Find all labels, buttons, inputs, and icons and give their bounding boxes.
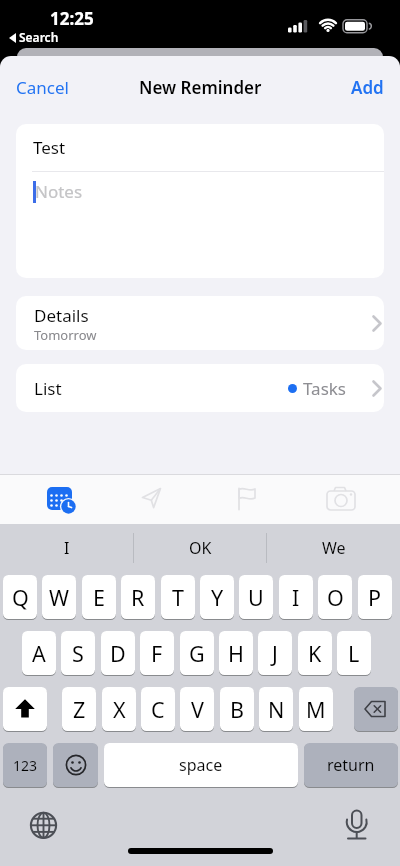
staticText: Q — [12, 583, 29, 612]
button[interactable]: OK — [133, 524, 267, 572]
button[interactable]: Y — [200, 575, 234, 619]
staticText: P — [368, 583, 382, 612]
staticText: return — [327, 754, 375, 776]
staticText: I — [292, 583, 300, 612]
button[interactable]: K — [298, 631, 332, 675]
staticText: C — [151, 695, 165, 724]
button[interactable]: V — [180, 687, 214, 731]
button[interactable]: 123 — [3, 743, 47, 787]
button[interactable] — [130, 475, 174, 523]
staticText: T — [172, 583, 184, 612]
staticText: We — [322, 537, 346, 559]
button[interactable]: Q — [3, 575, 37, 619]
staticText: F — [151, 639, 163, 668]
button[interactable]: X — [102, 687, 136, 731]
staticText: W — [49, 583, 69, 612]
staticText: I — [64, 537, 70, 559]
staticText: G — [189, 639, 205, 668]
button[interactable]: We — [267, 524, 400, 572]
button[interactable]: F — [140, 631, 174, 675]
button[interactable]: G — [180, 631, 214, 675]
staticText: L — [348, 639, 360, 668]
button[interactable]: T — [161, 575, 195, 619]
staticText: B — [230, 695, 244, 724]
button[interactable]: U — [239, 575, 273, 619]
button[interactable]: List — [16, 364, 384, 412]
button[interactable]: I — [0, 524, 133, 572]
button[interactable]: J — [258, 631, 292, 675]
staticText: J — [272, 639, 278, 668]
staticText: V — [191, 695, 204, 724]
staticText: K — [308, 639, 322, 668]
staticText: New Reminder — [139, 76, 262, 99]
button[interactable]: P — [358, 575, 392, 619]
button[interactable]: C — [141, 687, 175, 731]
button[interactable]: I — [279, 575, 313, 619]
button[interactable]: A — [22, 631, 56, 675]
staticText: 123 — [13, 756, 38, 775]
staticText: A — [32, 639, 46, 668]
staticText: OK — [189, 537, 212, 559]
button[interactable]: return — [304, 743, 398, 787]
staticText: E — [93, 583, 105, 612]
button[interactable]: Details — [16, 296, 384, 350]
staticText: Search — [19, 29, 59, 45]
button[interactable] — [224, 475, 268, 523]
staticText: Notes — [35, 180, 83, 203]
button[interactable]: E — [82, 575, 116, 619]
button[interactable] — [38, 475, 82, 523]
button[interactable]: L — [337, 631, 371, 675]
button[interactable]: Add — [351, 76, 384, 99]
staticText: R — [131, 583, 145, 612]
staticText: X — [113, 695, 126, 724]
button[interactable] — [318, 475, 362, 523]
button[interactable]: S — [61, 631, 95, 675]
button[interactable]: space — [104, 743, 298, 787]
staticText: U — [248, 583, 264, 612]
staticText: Add — [351, 76, 384, 99]
button[interactable]: O — [318, 575, 352, 619]
button[interactable]: M — [299, 687, 333, 731]
staticText: Tomorrow — [34, 326, 97, 344]
button[interactable]: N — [259, 687, 293, 731]
button[interactable]: H — [219, 631, 253, 675]
staticText: N — [268, 695, 285, 724]
button[interactable]: Z — [62, 687, 96, 731]
staticText: O — [327, 583, 344, 612]
button[interactable]: W — [42, 575, 76, 619]
staticText: Details — [34, 304, 89, 327]
button[interactable] — [340, 806, 374, 844]
button[interactable] — [24, 809, 58, 843]
staticText: List — [34, 377, 62, 400]
button[interactable] — [53, 743, 98, 787]
button[interactable]: B — [220, 687, 254, 731]
button[interactable] — [354, 687, 398, 731]
staticText: space — [179, 754, 223, 776]
staticText: Z — [73, 695, 86, 724]
staticText: M — [306, 695, 326, 724]
staticText: Test — [33, 136, 66, 159]
staticText: Cancel — [16, 76, 69, 99]
button[interactable]: R — [121, 575, 155, 619]
staticText: 12:25 — [50, 7, 94, 30]
staticText: Tasks — [303, 377, 346, 400]
staticText: Y — [211, 583, 224, 612]
staticText: H — [228, 639, 244, 668]
button[interactable]: D — [101, 631, 135, 675]
staticText: D — [110, 639, 126, 668]
button[interactable] — [3, 687, 47, 731]
button[interactable]: Cancel — [16, 76, 69, 99]
staticText: S — [72, 639, 84, 668]
